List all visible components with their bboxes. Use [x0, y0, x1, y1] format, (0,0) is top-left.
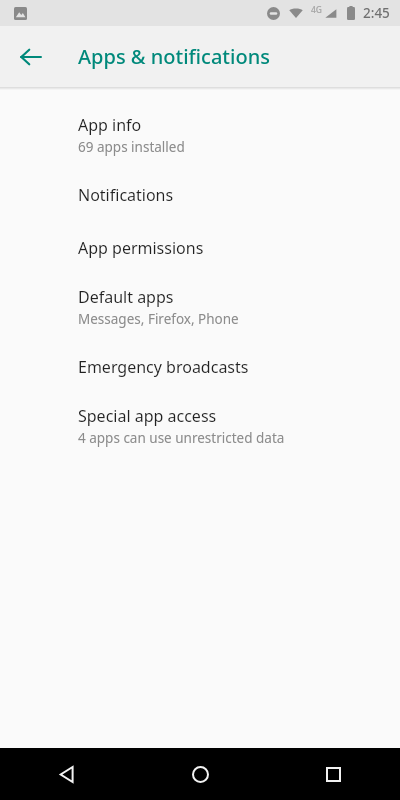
- button[interactable]: Notifications: [0, 168, 400, 221]
- staticText: App permissions: [78, 237, 204, 259]
- button[interactable]: Home: [134, 748, 267, 800]
- staticText: 4 apps can use unrestricted data: [78, 429, 285, 447]
- staticText: 69 apps installed: [78, 138, 185, 156]
- button[interactable]: App permissions: [0, 221, 400, 274]
- staticText: 4G: [311, 4, 323, 16]
- button[interactable]: Recent apps: [267, 748, 400, 800]
- staticText: Apps & notifications: [78, 43, 270, 70]
- staticText: 2:45: [363, 4, 390, 22]
- staticText: Default apps: [78, 286, 174, 308]
- staticText: Emergency broadcasts: [78, 356, 249, 378]
- button[interactable]: Back: [8, 34, 54, 80]
- button[interactable]: Special app access: [0, 393, 400, 459]
- button[interactable]: Emergency broadcasts: [0, 340, 400, 393]
- staticText: Notifications: [78, 184, 174, 206]
- button[interactable]: App info: [0, 102, 400, 168]
- button[interactable]: Default apps: [0, 274, 400, 340]
- button[interactable]: Back: [0, 748, 134, 800]
- staticText: App info: [78, 114, 142, 136]
- staticText: Messages, Firefox, Phone: [78, 310, 239, 328]
- staticText: Special app access: [78, 405, 217, 427]
